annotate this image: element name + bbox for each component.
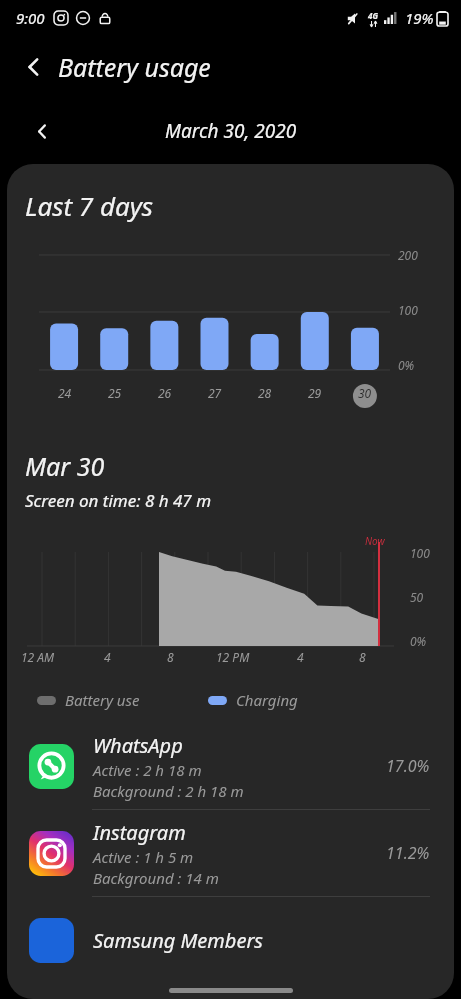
button[interactable]: Previous day — [22, 111, 62, 151]
staticText: Battery use — [65, 690, 140, 710]
staticText: March 30, 2020 — [165, 118, 297, 144]
staticText: 19% — [405, 8, 434, 28]
staticText: 4 — [104, 649, 111, 665]
staticText: 0% — [410, 633, 427, 649]
button[interactable]: WhatsApp — [7, 723, 454, 810]
staticText: Background : 14 m — [93, 868, 219, 888]
button[interactable]: Back — [14, 47, 54, 87]
staticText: 11.2% — [386, 842, 430, 864]
staticText: 200 — [398, 247, 418, 263]
button[interactable]: Samsung Members — [7, 897, 454, 983]
staticText: 9:00 — [16, 8, 45, 28]
staticText: 25 — [108, 385, 122, 401]
staticText: Last 7 days — [25, 188, 154, 223]
staticText: 30 — [358, 385, 372, 401]
staticText: Active : 2 h 18 m — [93, 760, 202, 780]
staticText: 12 AM — [21, 649, 55, 665]
staticText: 8 — [167, 649, 174, 665]
staticText: 17.0% — [386, 755, 430, 777]
staticText: Charging — [236, 690, 298, 710]
staticText: 27 — [208, 385, 222, 401]
staticText: 26 — [158, 385, 172, 401]
staticText: 0% — [398, 357, 415, 373]
staticText: WhatsApp — [93, 732, 183, 759]
staticText: Now — [365, 534, 385, 548]
staticText: 4G — [368, 10, 378, 21]
staticText: 100 — [410, 545, 430, 561]
staticText: 24 — [58, 385, 72, 401]
staticText: Instagram — [93, 819, 186, 846]
staticText: 100 — [398, 302, 418, 318]
staticText: 29 — [308, 385, 322, 401]
staticText: Samsung Members — [93, 927, 263, 954]
staticText: 28 — [258, 385, 272, 401]
button[interactable]: Instagram — [7, 810, 454, 897]
staticText: Active : 1 h 5 m — [93, 847, 194, 867]
staticText: Mar 30 — [25, 449, 105, 483]
staticText: 50 — [410, 589, 424, 605]
staticText: Background : 2 h 18 m — [93, 781, 244, 801]
staticText: Screen on time: 8 h 47 m — [25, 489, 212, 512]
staticText: 8 — [359, 649, 366, 665]
staticText: 4 — [297, 649, 304, 665]
staticText: 12 PM — [216, 649, 250, 665]
staticText: Battery usage — [58, 50, 211, 84]
